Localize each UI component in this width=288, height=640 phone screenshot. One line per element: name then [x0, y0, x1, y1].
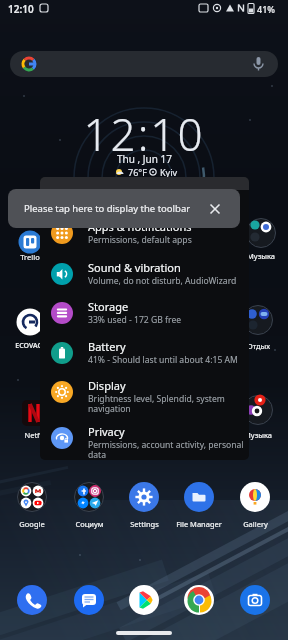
button[interactable]: Display [40, 369, 249, 415]
button[interactable] [18, 230, 42, 254]
staticText: 12:10 [83, 104, 205, 164]
staticText: 41% - Should last until about 4:15 AM [88, 354, 238, 366]
staticText: Display [88, 378, 126, 393]
button[interactable] [129, 585, 159, 615]
button[interactable]: Privacy [40, 413, 249, 460]
button[interactable]: Apps & notifications [40, 213, 249, 253]
button[interactable] [40, 177, 249, 190]
staticText: Google [19, 519, 45, 529]
staticText: Музыка [244, 430, 272, 440]
staticText: Battery [88, 339, 126, 354]
button[interactable] [74, 482, 104, 512]
staticText: Brightness level, Splendid, system navig… [88, 393, 225, 415]
button[interactable] [116, 631, 172, 635]
staticText: Please tap here to display the toolbar [24, 202, 191, 215]
staticText: Kyiv [160, 166, 178, 178]
staticText: 33% used - 172 GB free [88, 314, 182, 326]
staticText: Gallery [243, 519, 268, 529]
staticText: 41% [257, 3, 275, 15]
button[interactable] [246, 218, 276, 248]
button[interactable] [17, 585, 47, 615]
button[interactable] [10, 51, 278, 77]
button[interactable]: Sound & vibration [40, 254, 249, 294]
staticText: Settings [130, 519, 159, 529]
staticText: Netflix [24, 430, 48, 440]
button[interactable] [240, 482, 270, 512]
staticText: File Manager [176, 519, 222, 529]
staticText: 76°F [128, 166, 147, 178]
staticText: 12:10 [8, 2, 34, 16]
staticText: Privacy [88, 424, 125, 439]
button[interactable] [240, 585, 270, 615]
staticText: Социум [75, 519, 104, 529]
button[interactable]: Battery [40, 333, 249, 373]
button[interactable]: Storage [40, 293, 249, 333]
staticText: Отдых [247, 341, 270, 351]
button[interactable] [17, 482, 47, 512]
button[interactable] [210, 204, 220, 214]
staticText: ECOVACS [15, 341, 46, 351]
button[interactable] [243, 305, 273, 335]
staticText: Музыка [247, 251, 275, 261]
button[interactable] [16, 308, 44, 336]
staticText: Apps & notifications [88, 219, 192, 234]
button[interactable] [129, 482, 159, 512]
staticText: Sound & vibration [88, 260, 181, 275]
staticText: Permissions, account activity, personal … [88, 439, 244, 460]
button[interactable] [184, 482, 214, 512]
staticText: Storage [88, 299, 129, 314]
button[interactable]: Please tap here to display the toolbar [8, 189, 240, 228]
staticText: Trello [20, 252, 40, 262]
staticText: Thu , Jun 17 [117, 152, 172, 166]
staticText: Volume, do not disturb, AudioWizard [88, 275, 237, 287]
button[interactable] [74, 585, 104, 615]
button[interactable] [243, 395, 273, 425]
button[interactable] [21, 400, 47, 426]
staticText: Permissions, default apps [88, 234, 192, 246]
button[interactable] [184, 585, 214, 615]
